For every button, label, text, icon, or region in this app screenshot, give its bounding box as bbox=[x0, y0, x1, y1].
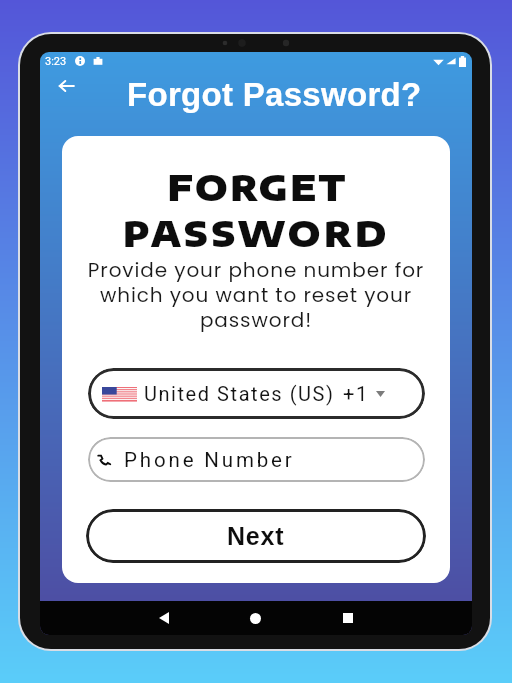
staticText: PASSWORD bbox=[123, 211, 390, 255]
staticText: +1 bbox=[343, 382, 369, 405]
staticText: Next bbox=[227, 522, 285, 550]
button[interactable]: Back bbox=[50, 70, 82, 102]
staticText: FORGET bbox=[167, 165, 348, 209]
staticText: Provide your phone number for which you … bbox=[70, 256, 442, 334]
button[interactable]: Phone Number bbox=[88, 437, 425, 482]
button[interactable]: United States (US) bbox=[88, 368, 425, 419]
button[interactable]: Next bbox=[86, 509, 426, 563]
button[interactable]: Back bbox=[150, 604, 178, 632]
staticText: Forgot Password? bbox=[127, 76, 422, 113]
button[interactable]: Home bbox=[241, 604, 269, 632]
staticText: Phone Number bbox=[124, 448, 295, 472]
staticText: United States (US) bbox=[144, 382, 335, 405]
staticText: 3:23 bbox=[45, 55, 67, 68]
button[interactable]: Recent apps bbox=[334, 604, 362, 632]
